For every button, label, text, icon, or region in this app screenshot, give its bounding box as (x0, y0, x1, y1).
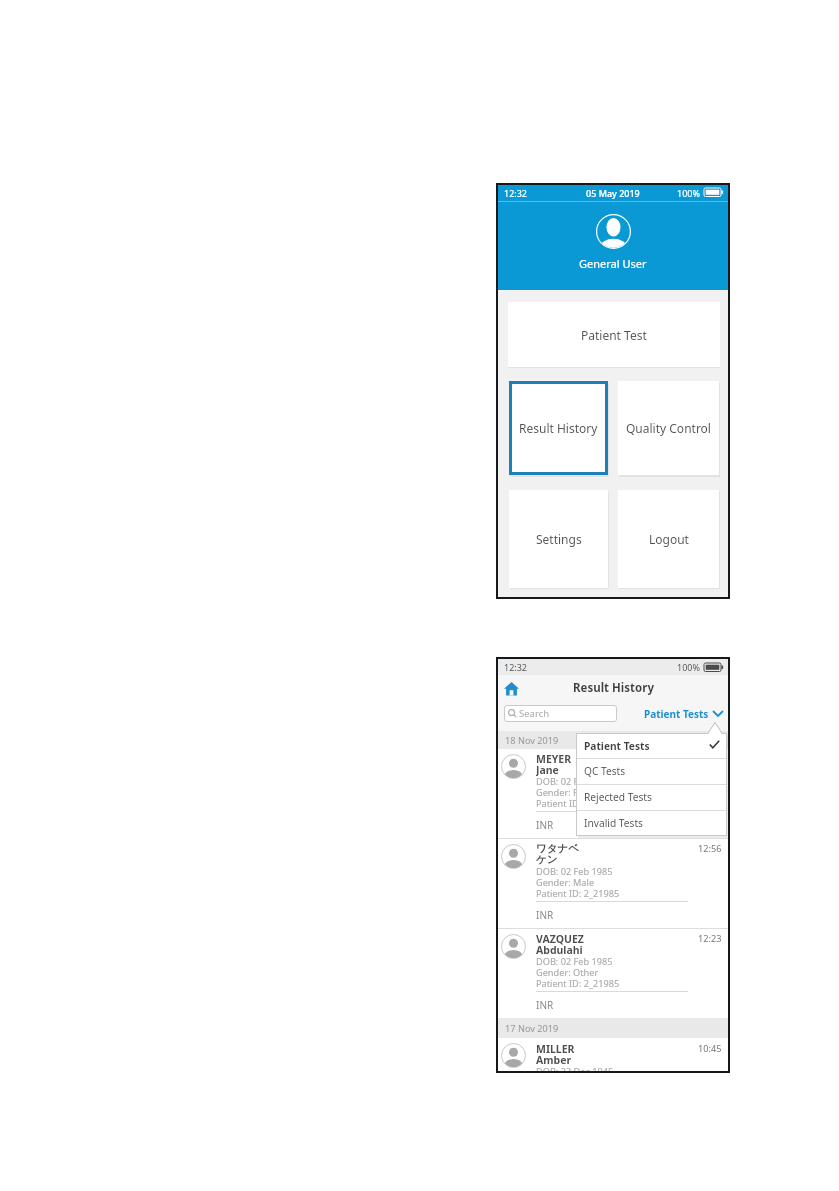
button[interactable]: Patient Tests (618, 705, 723, 722)
staticText: Result History (519, 420, 598, 436)
staticText: Rejected Tests (584, 790, 652, 804)
staticText: 17 Nov 2019 (505, 1022, 559, 1035)
button[interactable] (498, 839, 728, 927)
button[interactable]: Settings (509, 490, 608, 588)
staticText: Settings (536, 531, 582, 547)
staticText: Abdulahi (536, 943, 583, 956)
staticText: Jane (536, 763, 559, 776)
staticText: 05 May 2019 (586, 187, 640, 199)
button[interactable] (504, 705, 617, 722)
staticText: QC Tests (584, 764, 626, 778)
staticText: 12:56 (698, 842, 722, 855)
staticText: Patient ID: 2_21985 (536, 977, 620, 990)
staticText: Patient Tests (584, 739, 650, 753)
staticText: DOB: 02 Feb 1985 (536, 775, 613, 788)
staticText: INR (536, 818, 554, 831)
staticText: Patient ID: 2_21985 (536, 887, 620, 900)
button[interactable] (498, 1039, 728, 1071)
button[interactable] (577, 758, 726, 784)
staticText: 12:32 (504, 187, 528, 199)
staticText: Invalid Tests (584, 816, 643, 830)
staticText: 18 Nov 2019 (505, 734, 559, 747)
staticText: DOB: 23 Dec 1945 (536, 1065, 614, 1071)
staticText: 12:23 (698, 932, 722, 945)
staticText: ケン (536, 853, 558, 866)
staticText: Logout (649, 531, 689, 547)
button[interactable] (577, 810, 726, 836)
staticText: Quality Control (626, 420, 711, 436)
button[interactable] (577, 733, 726, 759)
staticText: Gender: Male (536, 876, 595, 889)
button[interactable]: Quality Control (618, 381, 719, 475)
staticText: DOB: 02 Feb 1985 (536, 955, 613, 968)
staticText: INR (536, 908, 554, 921)
staticText: Search (519, 707, 550, 720)
staticText: Amber (536, 1053, 572, 1066)
button[interactable] (577, 784, 726, 810)
staticText: 12:32 (504, 661, 528, 673)
staticText: ワタナベ (536, 842, 579, 855)
button[interactable] (504, 682, 519, 696)
staticText: VAZQUEZ (536, 932, 584, 945)
staticText: General User (579, 256, 647, 271)
staticText: 100% (677, 661, 700, 673)
staticText: INR (536, 998, 554, 1011)
staticText: MILLER (536, 1042, 575, 1055)
staticText: Result History (573, 680, 654, 696)
button[interactable]: Result History (509, 381, 608, 475)
staticText: Gender: Other (536, 966, 599, 979)
staticText: 10:45 (698, 1042, 722, 1055)
staticText: DOB: 02 Feb 1985 (536, 865, 613, 878)
staticText: 100% (677, 187, 700, 199)
staticText: Patient Test (581, 327, 647, 343)
button[interactable] (498, 749, 728, 837)
staticText: MEYER (536, 752, 572, 765)
staticText: Gender: Female (536, 786, 605, 799)
button[interactable] (498, 929, 728, 1017)
staticText: Patient Tests (644, 707, 709, 721)
button[interactable]: Patient Test (508, 302, 720, 367)
button[interactable]: Logout (618, 490, 719, 588)
staticText: Patient ID: 2_21985 (536, 797, 620, 810)
